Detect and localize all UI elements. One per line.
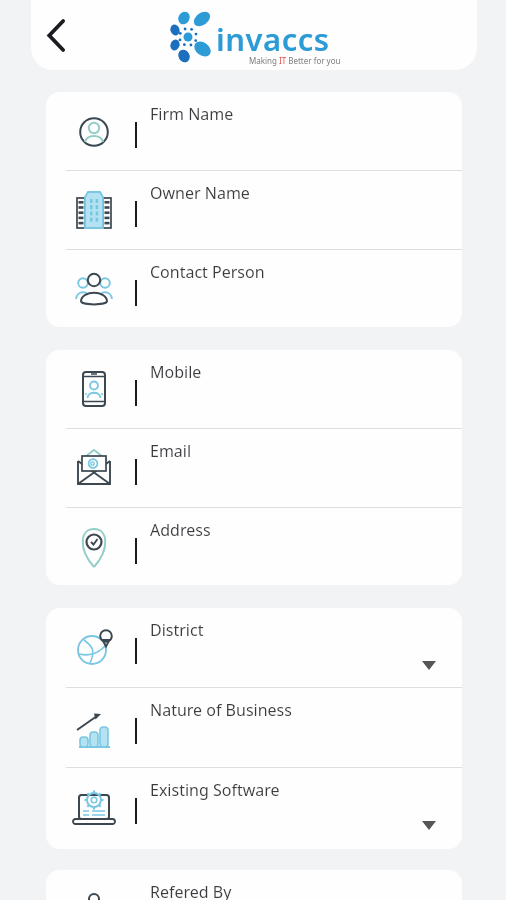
staticText: Existing Software	[150, 779, 280, 801]
staticText: Nature of Business	[150, 699, 292, 721]
staticText: Email	[150, 440, 192, 462]
staticText: Owner Name	[150, 182, 250, 204]
button[interactable]: Email	[46, 429, 462, 508]
button[interactable]: Existing Software	[46, 768, 462, 848]
staticText: Mobile	[150, 361, 202, 383]
button[interactable]: Firm Name	[46, 92, 462, 171]
staticText: Address	[150, 519, 211, 541]
staticText: District	[150, 619, 204, 641]
button[interactable]: Nature of Business	[46, 688, 462, 768]
button[interactable]: Address	[46, 508, 462, 585]
staticText: Contact Person	[150, 261, 265, 283]
button[interactable]: Refered By	[46, 870, 462, 900]
button[interactable]: Mobile	[46, 350, 462, 429]
staticText: Refered By	[150, 881, 232, 900]
button[interactable]: District	[46, 608, 462, 688]
staticText: invaccs	[216, 18, 330, 60]
button[interactable]	[33, 12, 79, 58]
staticText: Making IT Better for you	[249, 55, 341, 66]
staticText: Firm Name	[150, 103, 234, 125]
button[interactable]: Owner Name	[46, 171, 462, 250]
button[interactable]: Contact Person	[46, 250, 462, 327]
